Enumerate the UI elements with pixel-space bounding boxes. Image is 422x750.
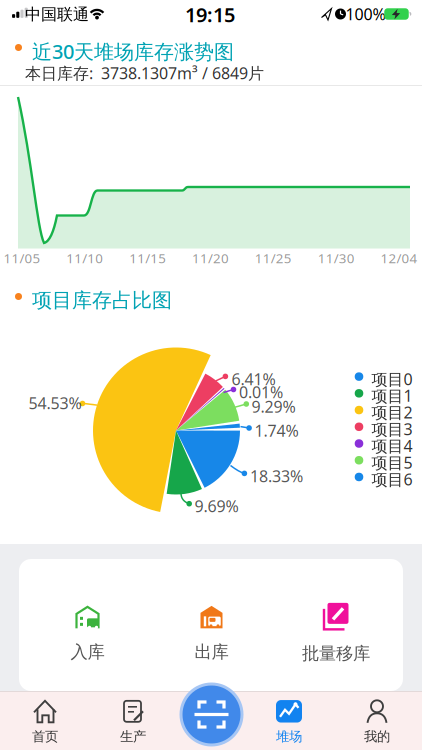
staticText: 18.33% bbox=[250, 465, 303, 487]
staticText: 近30天堆场库存涨势图 bbox=[32, 38, 234, 65]
button[interactable]: 堆场 bbox=[249, 697, 329, 747]
staticText: 54.53% bbox=[28, 392, 81, 414]
staticText: 生产 bbox=[120, 728, 146, 745]
staticText: 11/10 bbox=[66, 249, 103, 267]
staticText: 9.29% bbox=[251, 396, 295, 417]
button[interactable]: 首页 bbox=[5, 697, 85, 747]
staticText: 我的 bbox=[364, 728, 390, 745]
staticText: 出库 bbox=[194, 641, 228, 663]
staticText: 9.69% bbox=[194, 495, 238, 517]
staticText: 11/05 bbox=[3, 249, 40, 267]
button[interactable]: 出库 bbox=[194, 605, 228, 663]
staticText: 1.74% bbox=[254, 420, 298, 441]
staticText: 11/30 bbox=[318, 249, 355, 267]
staticText: 项目0 bbox=[371, 368, 412, 389]
staticText: 项目4 bbox=[371, 435, 412, 456]
staticText: 首页 bbox=[32, 728, 58, 745]
button[interactable]: 我的 bbox=[337, 697, 417, 747]
staticText: 堆场 bbox=[276, 728, 302, 745]
staticText: 本日库存: 3738.1307m³ / 6849片 bbox=[25, 62, 264, 84]
button[interactable]: Scan bbox=[178, 681, 244, 747]
staticText: 11/15 bbox=[129, 249, 166, 267]
staticText: 批量移库 bbox=[302, 643, 370, 664]
button[interactable]: 生产 bbox=[93, 697, 173, 747]
staticText: 中国联通 bbox=[25, 5, 89, 24]
staticText: 11/25 bbox=[255, 249, 292, 267]
staticText: 100% bbox=[345, 3, 385, 25]
staticText: 项目1 bbox=[371, 385, 412, 406]
staticText: 项目2 bbox=[371, 402, 412, 423]
staticText: 12/04 bbox=[380, 249, 417, 267]
staticText: 项目3 bbox=[371, 418, 412, 440]
staticText: 19:15 bbox=[185, 1, 235, 28]
staticText: 6.41% bbox=[231, 368, 275, 390]
staticText: 项目6 bbox=[371, 469, 412, 490]
button[interactable]: 批量移库 bbox=[302, 602, 370, 664]
staticText: 项目5 bbox=[371, 452, 412, 473]
staticText: 项目库存占比图 bbox=[32, 288, 172, 313]
staticText: 入库 bbox=[70, 641, 104, 663]
staticText: 11/20 bbox=[192, 249, 229, 267]
staticText: 0.01% bbox=[239, 381, 283, 403]
button[interactable]: 入库 bbox=[70, 605, 104, 663]
